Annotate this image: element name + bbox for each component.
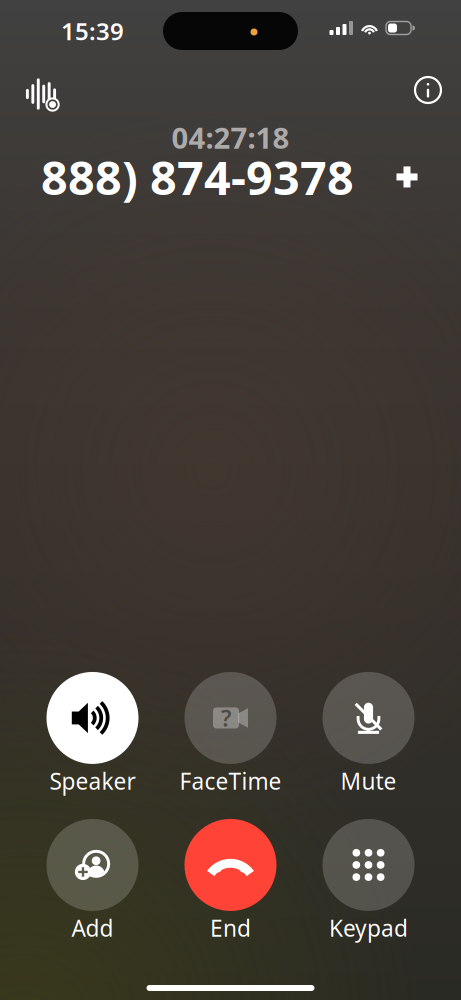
staticText: FaceTime [179, 766, 281, 796]
staticText: 04:27:18 [171, 118, 289, 157]
button[interactable]: Call Info [400, 70, 448, 118]
staticText: Keypad [329, 913, 408, 943]
button[interactable]: Speaker [23, 673, 161, 795]
button[interactable]: Add contact [385, 155, 429, 199]
staticText: 888) 874-9378 [41, 146, 354, 208]
staticText: End [210, 913, 251, 943]
staticText: Mute [340, 766, 396, 796]
staticText: ? [221, 703, 231, 733]
staticText: 15:39 [61, 15, 124, 47]
staticText: Add [71, 913, 113, 943]
button[interactable]: Add [23, 820, 161, 942]
button[interactable]: Live Voicemail [17, 70, 65, 118]
button[interactable]: End [161, 820, 299, 942]
staticText: Speaker [49, 766, 135, 796]
button[interactable]: Mute [299, 673, 437, 795]
button[interactable]: Keypad [299, 820, 437, 942]
button[interactable]: ? [161, 673, 299, 795]
